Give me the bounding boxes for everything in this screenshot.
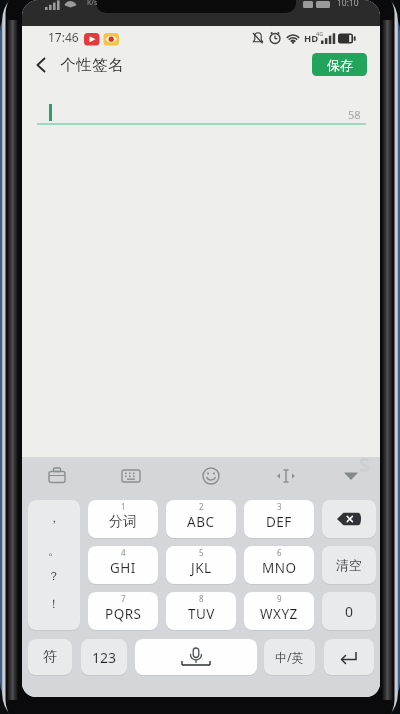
staticText: 个性签名 (60, 55, 124, 75)
button[interactable] (270, 460, 302, 492)
staticText: 保存 (327, 57, 353, 73)
staticText: 中/英 (275, 649, 304, 665)
button[interactable]: 9 (244, 592, 314, 630)
staticText: 6 (277, 547, 282, 558)
button[interactable]: 8 (166, 592, 236, 630)
button[interactable]: 保存 (312, 53, 367, 76)
staticText: 符 (43, 648, 57, 666)
button[interactable]: 1 (88, 500, 158, 538)
button[interactable]: 2 (166, 500, 236, 538)
staticText: 3 (277, 501, 282, 512)
button[interactable]: 123 (81, 639, 127, 675)
staticText: TUV (188, 605, 215, 623)
staticText: 1 (121, 501, 126, 512)
button[interactable] (195, 460, 227, 492)
button[interactable] (37, 90, 366, 130)
staticText: S (359, 452, 370, 478)
button[interactable]: 4 (88, 546, 158, 584)
button[interactable]: 6 (244, 546, 314, 584)
staticText: ABC (187, 513, 215, 531)
staticText: PQRS (105, 605, 142, 623)
button[interactable] (41, 460, 73, 492)
button[interactable] (324, 639, 374, 675)
button[interactable]: 3 (244, 500, 314, 538)
button[interactable] (135, 639, 257, 675)
button[interactable] (335, 460, 367, 492)
staticText: ？ (48, 568, 60, 583)
staticText: 2 (199, 501, 204, 512)
button[interactable] (115, 460, 147, 492)
staticText: 58 (348, 107, 361, 122)
staticText: 7 (121, 593, 126, 604)
staticText: WXYZ (260, 605, 298, 623)
staticText: ！ (48, 596, 60, 611)
staticText: 9 (277, 593, 282, 604)
button[interactable] (28, 52, 54, 78)
staticText: 清空 (336, 557, 362, 573)
staticText: GHI (110, 559, 136, 577)
button[interactable]: 中/英 (264, 639, 315, 675)
staticText: 17:46 (48, 29, 79, 45)
button[interactable]: 5 (166, 546, 236, 584)
staticText: 分词 (109, 513, 137, 531)
staticText: JKL (191, 559, 212, 577)
staticText: DEF (266, 513, 292, 531)
staticText: 123 (92, 648, 117, 667)
staticText: 4G (316, 30, 324, 37)
staticText: ， (48, 510, 60, 525)
button[interactable]: 0 (322, 592, 376, 630)
staticText: 10:10 (337, 0, 359, 9)
button[interactable]: ， (28, 500, 80, 630)
staticText: HD (304, 32, 319, 45)
staticText: 0 (345, 602, 354, 621)
staticText: 4 (121, 547, 126, 558)
button[interactable]: 符 (28, 639, 72, 675)
staticText: 8 (199, 593, 204, 604)
staticText: 。 (48, 543, 60, 558)
button[interactable] (322, 500, 376, 538)
staticText: 5 (199, 547, 204, 558)
button[interactable]: 清空 (322, 546, 376, 584)
staticText: MNO (262, 559, 297, 577)
button[interactable]: 7 (88, 592, 158, 630)
staticText: K/s (87, 0, 98, 8)
